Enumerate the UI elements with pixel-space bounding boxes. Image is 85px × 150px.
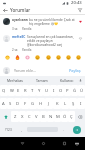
- staticText: I: [53, 88, 55, 94]
- button[interactable]: Sort comments: [75, 6, 85, 14]
- button[interactable]: Ş: [69, 98, 77, 109]
- staticText: E: [17, 88, 20, 94]
- staticText: J: [48, 101, 50, 107]
- staticText: X: [21, 114, 24, 120]
- button[interactable]: Q: [0, 85, 8, 96]
- staticText: ?123: [5, 128, 12, 132]
- button[interactable]: Back: [0, 6, 10, 14]
- staticText: Ş: [72, 101, 75, 107]
- staticText: B: [42, 114, 45, 120]
- staticText: Q: [2, 88, 6, 94]
- button[interactable]: Paylaş: [68, 67, 82, 74]
- button[interactable]: Ç: [68, 111, 75, 122]
- staticText: .: [63, 127, 64, 132]
- button[interactable]: W: [8, 85, 15, 96]
- staticText: Y: [38, 88, 41, 94]
- staticText: K: [56, 101, 59, 107]
- button[interactable]: N: [47, 111, 54, 122]
- button[interactable]: I: [77, 98, 85, 109]
- button[interactable]: ayselcann: [0, 17, 85, 32]
- button[interactable]: Kullanıcı: [60, 78, 74, 83]
- button[interactable]: X: [19, 111, 26, 122]
- button[interactable]: J: [45, 98, 53, 109]
- button[interactable]: Merhabas: [7, 78, 23, 83]
- button[interactable]: Emoji: [75, 54, 81, 60]
- staticText: O: [59, 88, 63, 94]
- button[interactable]: M: [54, 111, 61, 122]
- button[interactable]: Emoji: [55, 54, 61, 60]
- staticText: Z: [14, 114, 17, 120]
- button[interactable]: D: [14, 98, 21, 109]
- button[interactable]: F: [21, 98, 29, 109]
- button[interactable]: Voice input: [78, 78, 83, 83]
- button[interactable]: Backspace: [75, 111, 85, 122]
- staticText: U: [45, 88, 49, 94]
- staticText: N: [49, 114, 53, 120]
- staticText: P: [66, 88, 69, 94]
- staticText: 20:43: [71, 0, 82, 6]
- staticText: Ö: [63, 114, 67, 120]
- staticText: L: [64, 101, 67, 107]
- staticText: Ü: [80, 88, 84, 94]
- button[interactable]: Send: [73, 126, 81, 134]
- button[interactable]: K: [53, 98, 61, 109]
- button[interactable]: U: [43, 85, 50, 96]
- button[interactable]: ?123: [1, 124, 16, 135]
- button[interactable]: A: [0, 98, 7, 109]
- staticText: 2 sa Yanıtla: [12, 48, 32, 52]
- button[interactable]: P: [64, 85, 71, 96]
- staticText: S: [9, 101, 12, 107]
- button[interactable]: B: [40, 111, 47, 122]
- staticText: T: [31, 88, 34, 94]
- staticText: D: [16, 101, 20, 107]
- button[interactable]: Home: [39, 139, 48, 148]
- button[interactable]: Like: [77, 18, 83, 24]
- button[interactable]: Emoji: [65, 54, 71, 60]
- staticText: A: [2, 101, 5, 107]
- staticText: R: [24, 88, 27, 94]
- button[interactable]: Y: [36, 85, 43, 96]
- button[interactable]: Back: [18, 139, 27, 148]
- button[interactable]: E: [15, 85, 22, 96]
- button[interactable]: R: [22, 85, 29, 96]
- button[interactable]: H: [37, 98, 45, 109]
- staticText: ,: [21, 127, 22, 132]
- button[interactable]: Emoji: [14, 54, 20, 60]
- button[interactable]: Ü: [78, 85, 85, 96]
- staticText: Sonuçlarınd en çok kazandıran, etkilit v…: [27, 35, 76, 47]
- button[interactable]: I: [50, 85, 57, 96]
- staticText: G: [31, 101, 35, 107]
- staticText: C: [28, 114, 31, 120]
- staticText: I: [80, 101, 82, 107]
- staticText: Ç: [70, 114, 73, 120]
- button[interactable]: C: [26, 111, 33, 122]
- button[interactable]: O: [57, 85, 64, 96]
- button[interactable]: T: [29, 85, 36, 96]
- button[interactable]: Shift: [0, 111, 11, 122]
- button[interactable]: V: [33, 111, 40, 122]
- button[interactable]: Tamam: [36, 78, 48, 83]
- button[interactable]: Emoji: [4, 54, 10, 60]
- button[interactable]: S: [7, 98, 14, 109]
- staticText: Ğ: [73, 88, 77, 94]
- button[interactable]: Ğ: [71, 85, 78, 96]
- button[interactable]: Like: [77, 35, 83, 41]
- button[interactable]: mefteEC: [0, 34, 85, 53]
- button[interactable]: Comma: [18, 124, 25, 135]
- button[interactable]: L: [61, 98, 69, 109]
- button[interactable]: Ö: [61, 111, 68, 122]
- staticText: M: [56, 114, 60, 120]
- staticText: W: [10, 88, 14, 94]
- button[interactable]: Emoji: [34, 54, 40, 60]
- button[interactable]: G: [29, 98, 37, 109]
- staticText: mefteEC: [12, 35, 26, 39]
- staticText: Yorumlar: [10, 7, 31, 13]
- button[interactable]: Emoji: [45, 54, 51, 60]
- button[interactable]: Emoji: [24, 54, 30, 60]
- staticText: H: [39, 101, 43, 107]
- button[interactable]: Hide keyboard: [72, 139, 81, 148]
- button[interactable]: Recent apps: [60, 139, 69, 148]
- button[interactable]: Z: [11, 111, 19, 122]
